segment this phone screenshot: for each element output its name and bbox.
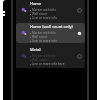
- staticText: Line or more info: [32, 39, 58, 43]
- button[interactable]: Home: [16, 0, 85, 21]
- button[interactable]: Metal: [16, 45, 85, 67]
- button[interactable]: Home (wall count only): [16, 23, 85, 43]
- other: Select option: [76, 53, 82, 59]
- staticText: Marker with title: [32, 54, 56, 58]
- staticText: Line or more info here: [32, 62, 65, 66]
- staticText: Wall count: [32, 12, 48, 16]
- staticText: Home: [30, 1, 42, 6]
- staticText: Marker with title: [32, 8, 56, 12]
- other: Select option: [76, 7, 82, 13]
- staticText: Marker with title: [32, 31, 56, 35]
- staticText: Wall count: [32, 35, 48, 39]
- staticText: Line or more info: [32, 16, 58, 20]
- staticText: Home (wall count only): [30, 24, 73, 29]
- staticText: Metal: [30, 47, 41, 52]
- staticText: Wall count: [32, 58, 48, 62]
- other: Select option: [76, 30, 82, 36]
